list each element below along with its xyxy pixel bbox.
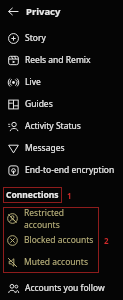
staticText: Activity Status — [25, 120, 81, 132]
staticText: Blocked accounts — [24, 234, 94, 246]
button[interactable]: Blocked accounts — [3, 229, 99, 251]
staticText: Live — [25, 76, 41, 88]
button[interactable]: Reels and Remix — [0, 49, 123, 71]
button[interactable]: End-to-end encryption — [0, 159, 123, 181]
staticText: 1 — [67, 190, 72, 201]
staticText: Reels and Remix — [25, 54, 91, 66]
staticText: End-to-end encryption — [25, 164, 115, 176]
staticText: Connections — [6, 189, 59, 201]
staticText: Guides — [25, 98, 53, 110]
staticText: Story — [25, 32, 46, 44]
button[interactable]: Activity Status — [0, 115, 123, 137]
button[interactable]: Muted accounts — [3, 251, 99, 273]
button[interactable]: Story — [0, 27, 123, 49]
staticText: Restricted accounts — [24, 207, 99, 229]
button[interactable]: Live — [0, 71, 123, 93]
button[interactable]: Messages — [0, 137, 123, 159]
button[interactable]: Back — [0, 0, 26, 22]
staticText: Privacy — [26, 5, 61, 18]
staticText: 2 — [104, 235, 109, 246]
staticText: Messages — [25, 142, 65, 154]
staticText: Muted accounts — [24, 256, 88, 268]
staticText: Accounts you follow — [25, 282, 105, 294]
button[interactable]: Accounts you follow — [0, 277, 123, 299]
button[interactable]: Restricted accounts — [3, 207, 99, 229]
button[interactable]: Guides — [0, 93, 123, 115]
